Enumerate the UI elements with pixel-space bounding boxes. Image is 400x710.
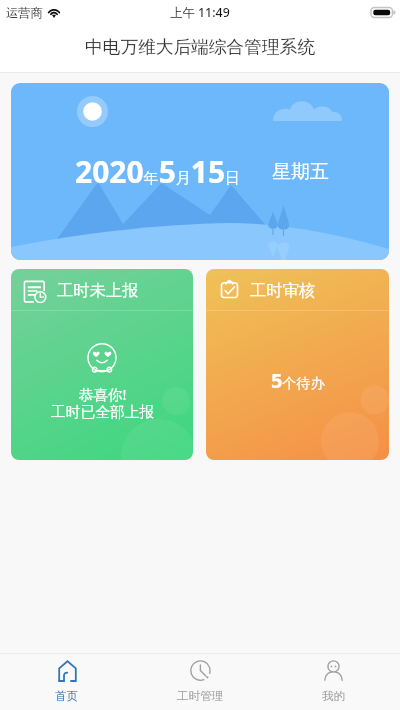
button[interactable]: Timesheet management: [134, 654, 267, 710]
staticText: 工时审核: [250, 280, 316, 301]
staticText: 上午 11:49: [170, 4, 230, 21]
button[interactable]: Home: [0, 654, 134, 710]
staticText: 工时管理: [177, 689, 224, 704]
button[interactable]: 2020年5月15日: [11, 83, 389, 260]
staticText: 运营商: [6, 5, 43, 20]
staticText: 星期五: [272, 160, 329, 184]
button[interactable]: 工时未上报: [11, 269, 193, 460]
staticText: 工时未上报: [57, 280, 139, 301]
staticText: 2020年5月15日: [75, 151, 241, 192]
button[interactable]: 工时审核: [206, 269, 389, 460]
staticText: 我的: [322, 689, 346, 704]
staticText: 首页: [55, 689, 79, 704]
staticText: 5个待办: [271, 367, 325, 394]
button[interactable]: Profile: [267, 654, 400, 710]
staticText: 恭喜你! 工时已全部上报: [51, 384, 154, 422]
staticText: 中电万维大后端综合管理系统: [85, 36, 315, 58]
